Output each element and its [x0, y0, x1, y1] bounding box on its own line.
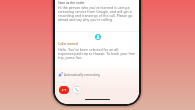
staticText: Hi the person who you've learned is usin… — [58, 5, 130, 10]
staticText: Caller named — [58, 42, 78, 46]
staticText: Automatically connecting — [64, 73, 100, 77]
button[interactable]: Answer call — [72, 86, 82, 94]
staticText: recording and transcript of the call. Pl… — [58, 13, 133, 18]
staticText: screening service from Google, and will … — [58, 9, 132, 14]
staticText: expenses paid trip to Hawaii. To book yo… — [58, 51, 136, 56]
staticText: Save as the coder — [58, 1, 85, 5]
button[interactable]: Decline call — [59, 86, 69, 94]
staticText: ahead and say why you're calling. — [58, 17, 113, 22]
staticText: trip, press five- — [58, 55, 83, 60]
staticText: Hello. You've been selected for an all- — [58, 47, 120, 52]
